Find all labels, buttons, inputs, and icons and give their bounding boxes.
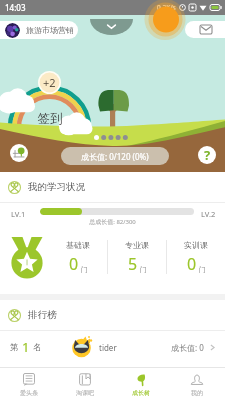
staticText: 成长值: 0 — [171, 342, 204, 353]
button[interactable]: 爱头条 — [0, 368, 57, 400]
staticText: 门 — [140, 265, 147, 274]
button[interactable]: 我的 — [169, 368, 225, 400]
staticText: 专业课 — [125, 240, 149, 250]
button[interactable]: My tree — [10, 144, 28, 162]
staticText: 排行榜 — [28, 309, 57, 321]
staticText: 门 — [199, 265, 206, 274]
staticText: 我的学习状况 — [28, 181, 85, 193]
button[interactable]: Expand — [90, 19, 133, 35]
button[interactable]: 成长树 — [113, 368, 169, 400]
staticText: 淘课吧 — [76, 389, 94, 397]
button[interactable]: +2 — [38, 71, 61, 94]
staticText: 成长值: 0/120 (0%) — [81, 151, 149, 162]
staticText: LV.1 — [11, 209, 26, 219]
staticText: 1 — [22, 338, 30, 356]
button[interactable]: 签到 — [37, 111, 63, 127]
button[interactable]: 基础课 — [49, 232, 107, 282]
button[interactable]: 淘课吧 — [57, 368, 113, 400]
staticText: tider — [99, 342, 117, 353]
staticText: 基础课 — [66, 240, 90, 250]
staticText: 实训课 — [184, 240, 208, 250]
staticText: 门 — [81, 265, 88, 274]
staticText: 总成长值: 82/300 — [0, 218, 225, 226]
staticText: 旅游市场营销 — [26, 25, 74, 35]
button[interactable]: Help — [198, 146, 216, 164]
button[interactable]: 专业课 — [108, 232, 166, 282]
staticText: 0.2K/s — [157, 3, 176, 12]
staticText: 14:03 — [5, 2, 26, 13]
staticText: 我的 — [191, 389, 203, 397]
staticText: LV.2 — [201, 209, 216, 219]
staticText: 爱头条 — [20, 389, 38, 397]
staticText: 成长树 — [132, 389, 150, 397]
button[interactable]: 第 — [10, 331, 217, 363]
staticText: 名 — [33, 342, 42, 353]
staticText: ? — [204, 146, 211, 164]
staticText: 0 — [69, 253, 79, 275]
button[interactable]: 实训课 — [167, 232, 225, 282]
staticText: 0 — [187, 253, 197, 275]
staticText: +2 — [43, 75, 56, 90]
staticText: 5 — [128, 253, 138, 275]
staticText: 第 — [10, 342, 19, 353]
button[interactable]: Messages — [185, 21, 225, 38]
button[interactable]: 成长值: 0/120 (0%) — [61, 147, 169, 165]
button[interactable]: 旅游市场营销 — [0, 21, 78, 39]
